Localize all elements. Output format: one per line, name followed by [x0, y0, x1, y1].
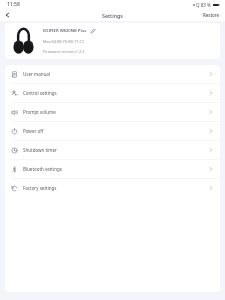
button[interactable]: User manual: [5, 65, 220, 83]
button[interactable]: Power off: [5, 122, 220, 140]
staticText: Firmware version:1.2.3: [43, 49, 85, 54]
staticText: Q 83 %: [196, 2, 211, 8]
staticText: Prompt volume: [23, 109, 56, 115]
staticText: Control settings: [23, 90, 57, 96]
button[interactable]: Rename device: [90, 28, 96, 34]
staticText: EDIFIER W820NB Plus: [43, 28, 87, 34]
staticText: Bluetooth settings: [23, 166, 62, 172]
button[interactable]: Prompt volume: [5, 103, 220, 121]
staticText: 11:58: [7, 1, 20, 8]
button[interactable]: Restore: [198, 10, 225, 20]
button[interactable]: Shutdown timer: [5, 141, 220, 159]
button[interactable]: Back: [0, 9, 14, 21]
staticText: Mac:04:98:76:5B:17:C7: [43, 39, 85, 44]
button[interactable]: Control settings: [5, 84, 220, 102]
button[interactable]: EDIFIER W820NB Plus: [5, 23, 220, 59]
button[interactable]: Bluetooth settings: [5, 160, 220, 178]
button[interactable]: Factory settings: [5, 179, 220, 197]
staticText: Shutdown timer: [23, 147, 57, 153]
staticText: Settings: [102, 12, 123, 19]
staticText: Power off: [23, 128, 44, 134]
staticText: Restore: [203, 12, 220, 18]
staticText: User manual: [23, 71, 50, 77]
staticText: Factory settings: [23, 185, 57, 191]
